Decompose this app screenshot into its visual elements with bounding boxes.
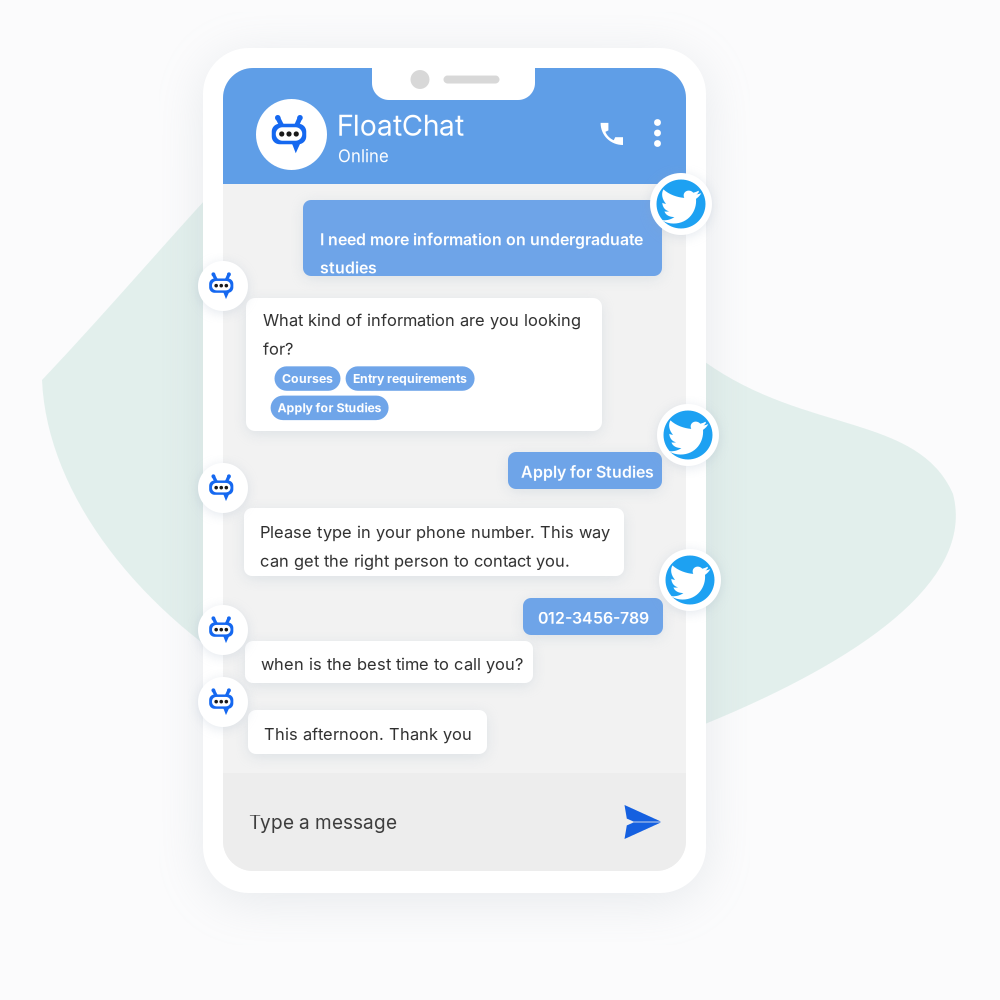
staticText: Please type in your phone number. This w… <box>260 522 610 571</box>
staticText: Type a message <box>249 810 397 833</box>
staticText: when is the best time to call you? <box>261 654 523 674</box>
button[interactable]: 012-3456-789 <box>523 598 663 635</box>
button[interactable]: Apply for Studies <box>271 396 389 420</box>
button[interactable]: Send <box>624 804 662 840</box>
staticText: What kind of information are you looking… <box>263 310 581 359</box>
button[interactable]: Courses <box>274 366 340 391</box>
staticText: FloatChat <box>337 108 464 143</box>
staticText: Entry requirements <box>353 371 467 386</box>
button[interactable]: More options <box>654 119 661 147</box>
staticText: Online <box>338 146 389 166</box>
staticText: Courses <box>282 371 333 386</box>
staticText: Apply for Studies <box>278 400 382 415</box>
staticText: Apply for Studies <box>521 462 654 482</box>
button[interactable]: Apply for Studies <box>508 452 662 489</box>
staticText: 012-3456-789 <box>538 608 649 628</box>
staticText: This afternoon. Thank you <box>264 724 472 744</box>
button[interactable]: Entry requirements <box>346 366 475 391</box>
button[interactable]: Call <box>600 122 624 146</box>
button[interactable]: I need more information on undergraduate… <box>303 200 662 276</box>
staticText: I need more information on undergraduate… <box>320 230 643 277</box>
